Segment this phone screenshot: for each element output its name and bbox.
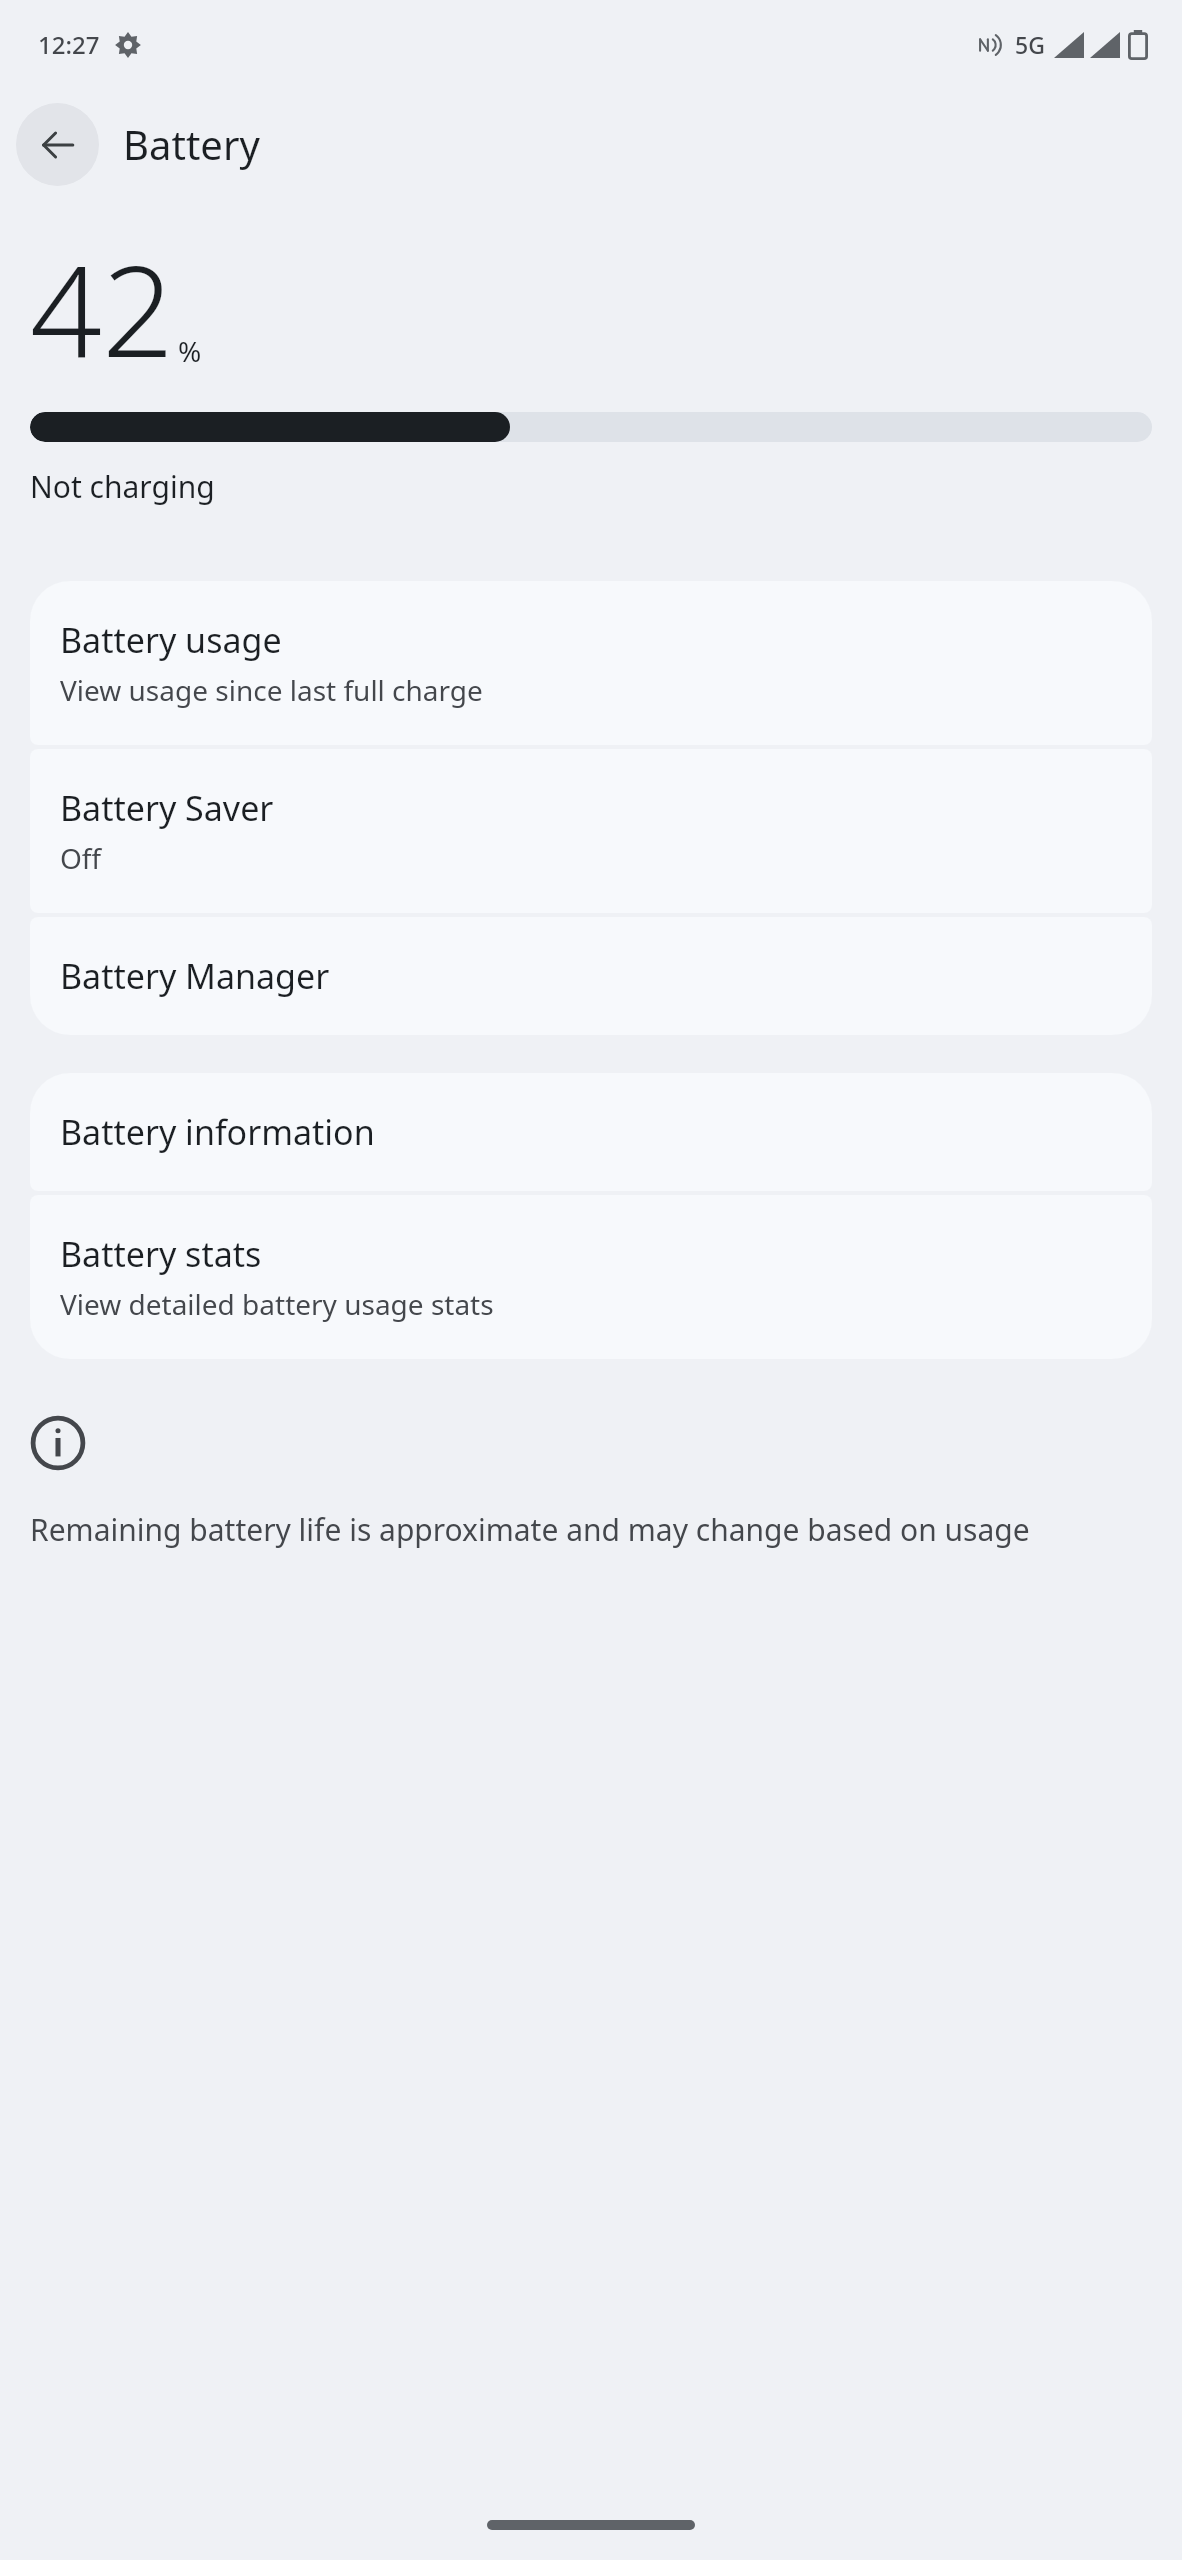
button[interactable]: Battery Saver: [30, 749, 1152, 913]
staticText: Off: [60, 839, 102, 877]
staticText: View detailed battery usage stats: [60, 1285, 494, 1323]
staticText: Battery stats: [60, 1231, 262, 1277]
staticText: Battery Saver: [60, 785, 274, 831]
button[interactable]: Battery information: [30, 1073, 1152, 1191]
staticText: Battery usage: [60, 617, 282, 663]
staticText: 5G: [1015, 29, 1045, 60]
staticText: Remaining battery life is approximate an…: [30, 1509, 1030, 1550]
button[interactable]: Battery Manager: [30, 917, 1152, 1035]
staticText: Not charging: [30, 466, 215, 507]
staticText: 42: [30, 222, 174, 394]
staticText: View usage since last full charge: [60, 671, 483, 709]
button[interactable]: Battery stats: [30, 1195, 1152, 1359]
button[interactable]: Back: [16, 103, 99, 186]
staticText: Battery Manager: [60, 953, 330, 999]
staticText: Battery: [123, 117, 260, 171]
staticText: %: [178, 332, 202, 370]
button[interactable]: Battery usage: [30, 581, 1152, 745]
staticText: Battery information: [60, 1109, 375, 1155]
staticText: 12:27: [38, 28, 100, 61]
